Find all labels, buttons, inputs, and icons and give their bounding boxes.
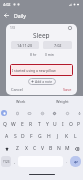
button[interactable]: Shift <box>1 142 13 155</box>
staticText: Q <box>3 121 7 128</box>
button[interactable]: U <box>51 118 59 130</box>
staticText: Y <box>46 121 49 128</box>
button[interactable]: 7:02 <box>43 41 72 49</box>
button[interactable]: 14:11:20 <box>11 41 39 49</box>
button[interactable]: Sticker <box>64 110 70 116</box>
staticText: ?123 <box>3 160 10 164</box>
button[interactable]: S <box>11 130 19 142</box>
staticText: Work <box>16 99 26 104</box>
button[interactable]: GIF <box>26 110 32 116</box>
button[interactable]: K <box>62 130 71 142</box>
button[interactable]: J <box>53 130 62 142</box>
staticText: O <box>69 121 73 128</box>
button[interactable]: Settings <box>51 110 57 116</box>
button[interactable]: Cancel <box>9 85 25 94</box>
button[interactable]: W <box>9 118 18 130</box>
staticText: P <box>77 121 81 128</box>
staticText: X <box>25 145 28 152</box>
button[interactable]: Microphone <box>76 110 82 116</box>
button[interactable]: Google search <box>1 110 7 116</box>
button[interactable]: O <box>67 118 75 130</box>
button[interactable]: C <box>31 142 39 155</box>
button[interactable]: Weight <box>41 96 83 107</box>
button[interactable]: G <box>35 130 44 142</box>
staticText: 8 hr <box>30 52 37 57</box>
button[interactable]: Z <box>13 142 22 155</box>
button[interactable]: T <box>35 118 43 130</box>
button[interactable]: Y <box>43 118 51 130</box>
staticText: D <box>21 133 25 140</box>
staticText: Z <box>16 145 19 152</box>
button[interactable]: N <box>55 142 63 155</box>
button[interactable]: A <box>3 130 11 142</box>
button[interactable]: Clipboard <box>14 110 20 116</box>
staticText: N <box>57 145 61 152</box>
staticText: 0 min <box>45 52 54 57</box>
button[interactable]: Emoji <box>39 110 45 116</box>
button[interactable]: E <box>18 118 27 130</box>
button[interactable]: X <box>22 142 31 155</box>
staticText: G <box>38 133 42 140</box>
staticText: F <box>30 133 33 140</box>
staticText: C <box>33 145 37 152</box>
staticText: V <box>41 145 45 152</box>
button[interactable]: I <box>59 118 67 130</box>
button[interactable]: H <box>44 130 53 142</box>
staticText: 4:02 <box>3 2 11 7</box>
staticText: H <box>47 133 51 140</box>
button[interactable]: ?123 <box>1 156 11 167</box>
staticText: Cancel <box>11 87 23 92</box>
staticText: T <box>38 121 41 128</box>
button[interactable]: V <box>39 142 47 155</box>
staticText: Weight <box>56 99 69 104</box>
staticText: 7:02 <box>54 43 62 48</box>
button[interactable]: Work <box>0 96 41 107</box>
staticText: B <box>49 145 53 152</box>
button[interactable]: R <box>27 118 35 130</box>
staticText: 14:11:20 <box>17 43 33 48</box>
staticText: Sleep <box>33 31 50 39</box>
staticText: . <box>66 159 68 164</box>
button[interactable]: Enter <box>70 156 81 167</box>
staticText: E <box>21 121 24 128</box>
button[interactable]: Help <box>67 25 73 31</box>
staticText: S <box>14 133 17 140</box>
staticText: I <box>62 121 64 128</box>
button[interactable]: Save <box>61 85 74 94</box>
button[interactable]: D <box>19 130 27 142</box>
staticText: Add a note <box>35 79 53 84</box>
button[interactable]: B <box>47 142 55 155</box>
staticText: M <box>65 145 70 152</box>
staticText: A <box>5 133 9 140</box>
staticText: U <box>53 121 57 128</box>
staticText: K <box>65 133 69 140</box>
staticText: J <box>57 133 59 140</box>
button[interactable]: Back <box>0 9 12 21</box>
staticText: , <box>14 159 16 164</box>
button[interactable]: Backspace <box>71 142 82 155</box>
staticText: Daily <box>14 12 27 19</box>
button[interactable]: P <box>75 118 83 130</box>
staticText: I started using a new pillow <box>12 68 56 73</box>
button[interactable]: L <box>71 130 80 142</box>
staticText: Save <box>63 87 72 92</box>
button[interactable]: Q <box>0 118 9 130</box>
button[interactable]: F <box>27 130 35 142</box>
staticText: R <box>29 121 33 128</box>
button[interactable]: Comma <box>11 156 18 167</box>
button[interactable]: Add a note <box>28 78 56 85</box>
staticText: W <box>11 121 16 128</box>
button[interactable]: I started using a new pillow <box>10 64 73 76</box>
staticText: 1/3 <box>10 26 15 30</box>
staticText: L <box>74 133 77 140</box>
button[interactable]: M <box>63 142 71 155</box>
